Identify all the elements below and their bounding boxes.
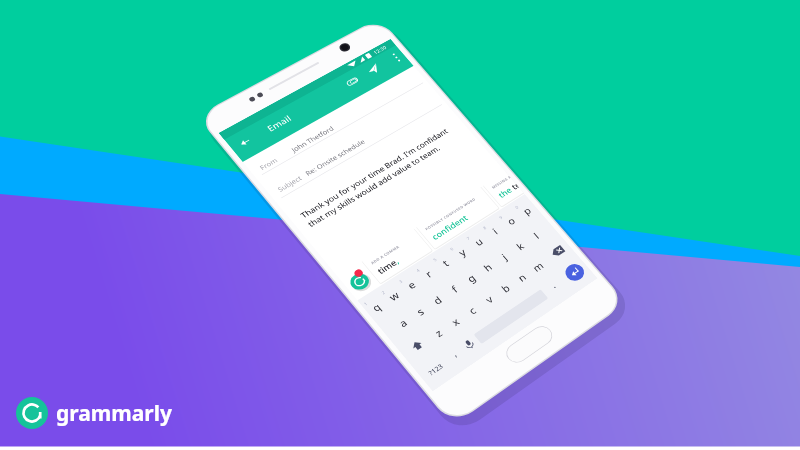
other: Grammarly Email demo bbox=[0, 0, 800, 450]
button[interactable]: Grammarly Email demo bbox=[0, 0, 800, 450]
